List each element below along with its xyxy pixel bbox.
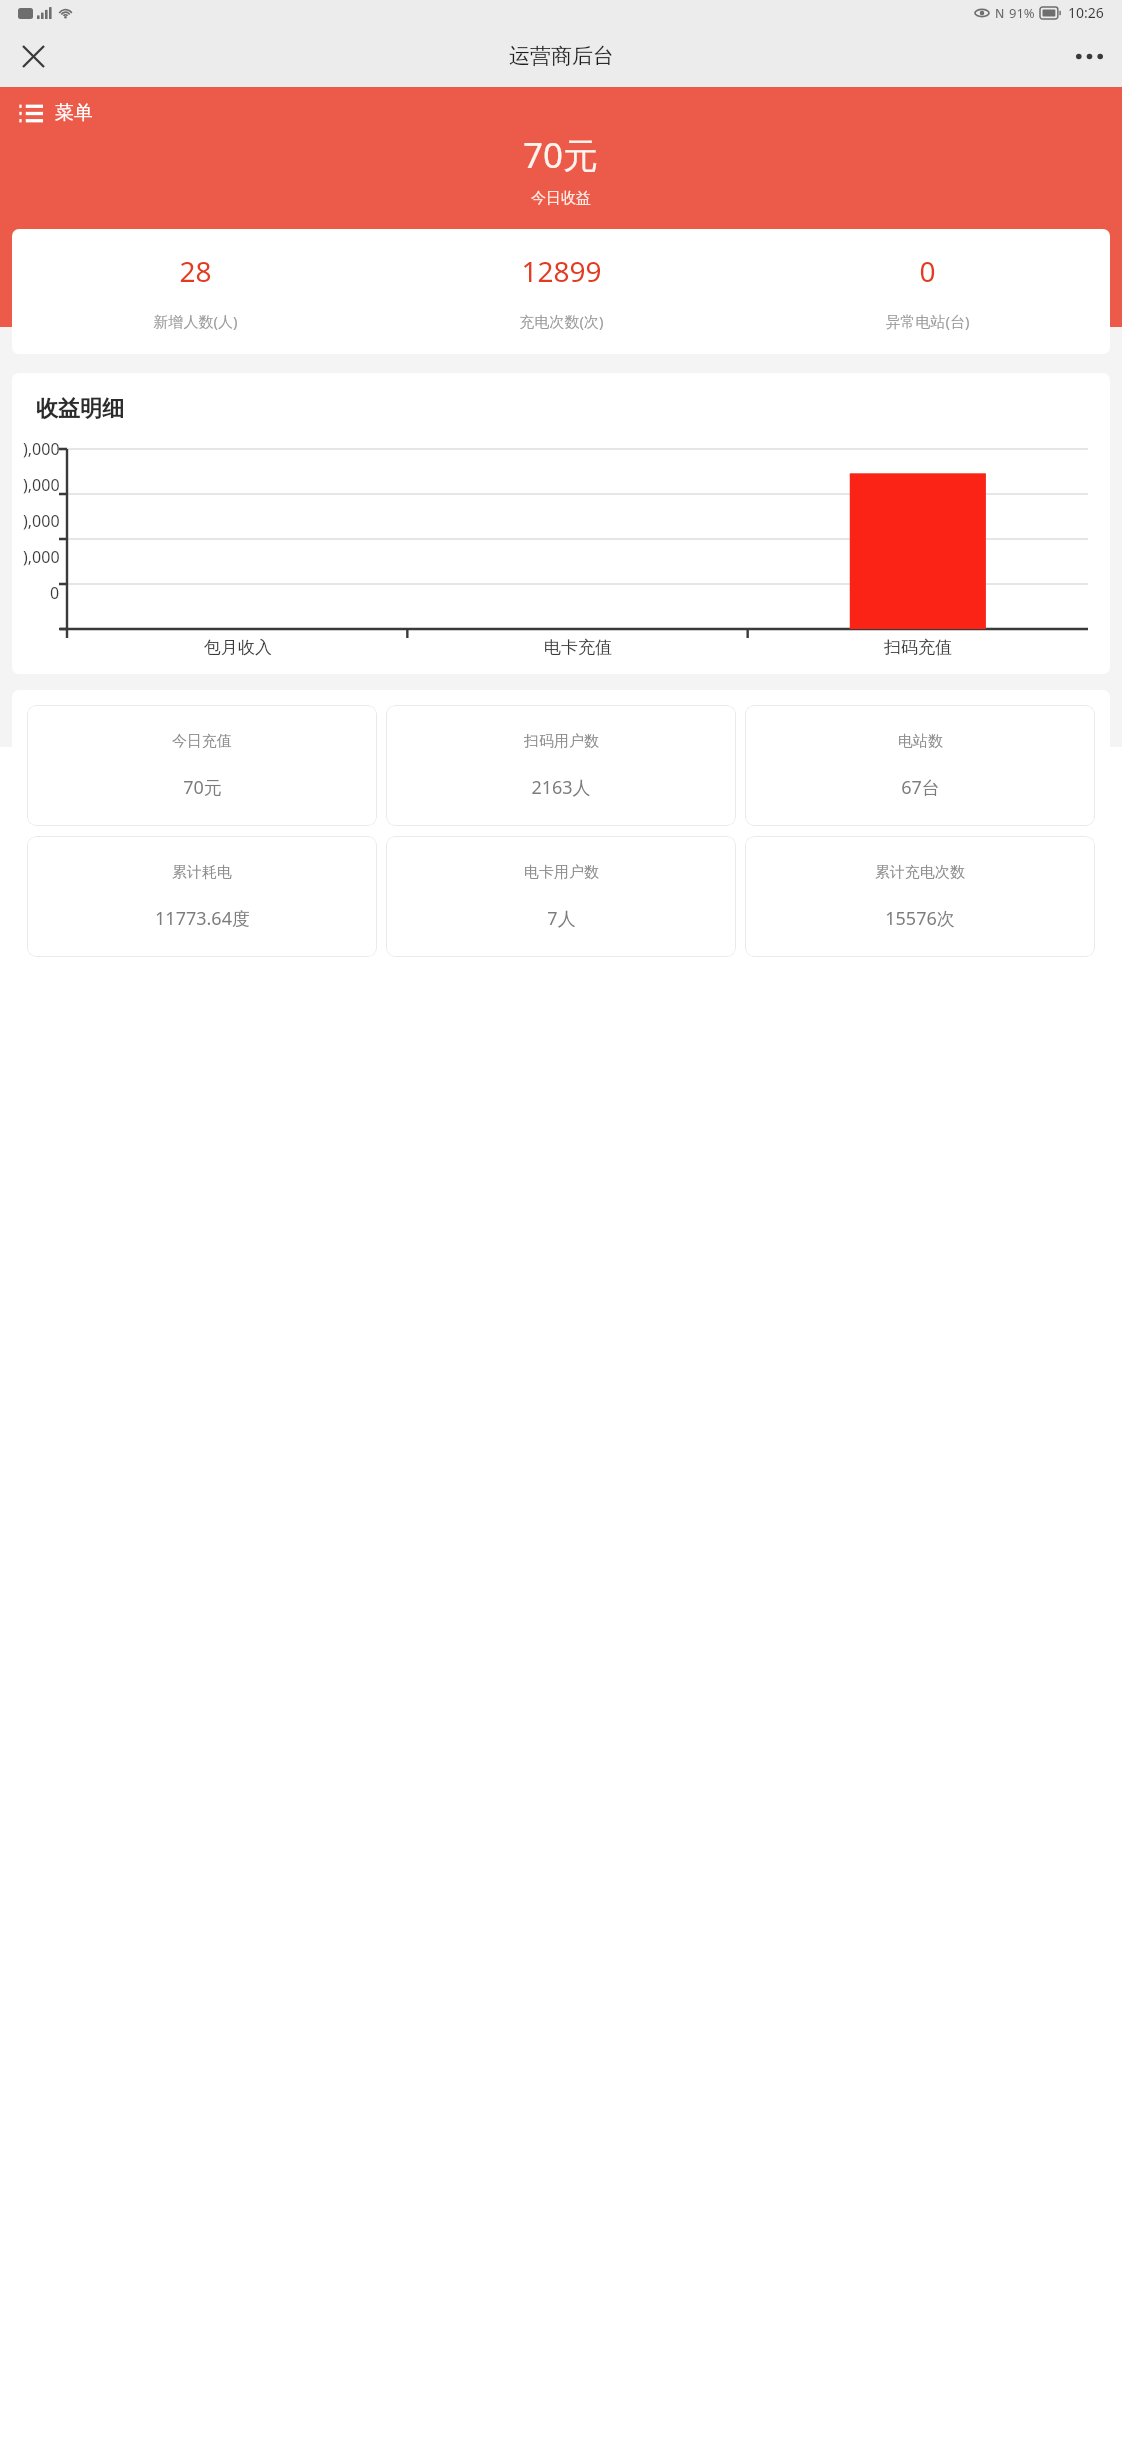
- staticText: 扫码充值: [884, 637, 952, 658]
- staticText: 0: [50, 582, 60, 604]
- button[interactable]: 电卡用户数: [386, 836, 736, 957]
- button[interactable]: 电站数: [745, 705, 1095, 826]
- staticText: 电站数: [898, 732, 943, 751]
- staticText: 10:26: [1068, 3, 1104, 22]
- button[interactable]: 今日充值: [12, 690, 1110, 972]
- staticText: 收益明细: [36, 395, 124, 423]
- staticText: 累计充电次数: [875, 863, 965, 882]
- staticText: 充电次数(次): [519, 311, 604, 331]
- staticText: 70元: [183, 775, 222, 800]
- button[interactable]: 今日充值: [27, 705, 377, 826]
- staticText: 28: [179, 252, 212, 290]
- staticText: 12899: [521, 252, 602, 290]
- staticText: 今日收益: [531, 189, 591, 208]
- button[interactable]: 28: [12, 229, 1110, 354]
- staticText: 累计耗电: [172, 863, 232, 882]
- staticText: ),000: [23, 474, 60, 496]
- staticText: 今日充值: [172, 732, 232, 751]
- staticText: 11773.64度: [155, 906, 250, 931]
- button[interactable]: 菜单: [12, 93, 99, 133]
- button[interactable]: Close: [8, 31, 58, 81]
- staticText: 67台: [901, 775, 940, 800]
- staticText: ),000: [23, 438, 60, 460]
- staticText: 菜单: [55, 101, 93, 125]
- staticText: N: [995, 5, 1005, 21]
- staticText: 91%: [1009, 4, 1035, 22]
- staticText: 7人: [547, 906, 576, 931]
- staticText: 异常电站(台): [885, 311, 970, 331]
- staticText: 70元: [523, 131, 599, 179]
- staticText: ),000: [23, 510, 60, 532]
- staticText: 2163人: [531, 775, 591, 800]
- staticText: 电卡充值: [544, 637, 612, 658]
- staticText: 电卡用户数: [524, 863, 599, 882]
- staticText: 新增人数(人): [153, 311, 238, 331]
- staticText: 包月收入: [204, 637, 272, 658]
- staticText: 运营商后台: [509, 43, 614, 69]
- button[interactable]: 累计充电次数: [745, 836, 1095, 957]
- staticText: ),000: [23, 546, 60, 568]
- staticText: 15576次: [885, 906, 955, 931]
- button[interactable]: 收益明细: [12, 373, 1110, 674]
- staticText: 0: [919, 252, 936, 290]
- button[interactable]: 累计耗电: [27, 836, 377, 957]
- button[interactable]: 扫码用户数: [386, 705, 736, 826]
- staticText: 扫码用户数: [524, 732, 599, 751]
- button[interactable]: More options: [1064, 31, 1114, 81]
